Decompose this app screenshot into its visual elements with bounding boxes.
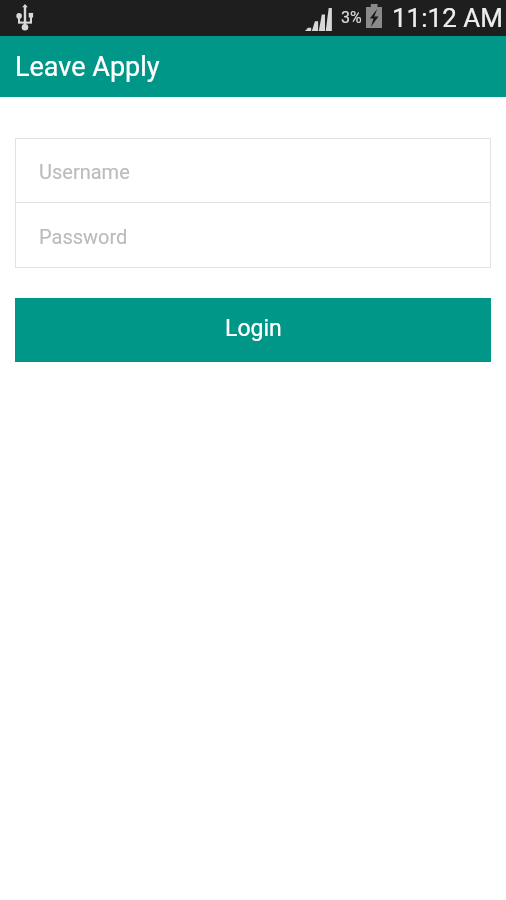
other: Signal strength (305, 8, 332, 31)
button[interactable]: Password (15, 203, 491, 268)
staticText: Login (225, 315, 282, 342)
staticText: 3% (341, 8, 362, 27)
other: USB connected (16, 4, 34, 31)
staticText: 11:12 AM (392, 3, 503, 33)
staticText: Password (39, 225, 128, 248)
button[interactable]: Login (15, 298, 491, 362)
staticText: Leave Apply (15, 51, 160, 83)
button[interactable]: Username (15, 138, 491, 203)
staticText: Username (39, 160, 130, 183)
other: Battery charging (366, 4, 382, 28)
